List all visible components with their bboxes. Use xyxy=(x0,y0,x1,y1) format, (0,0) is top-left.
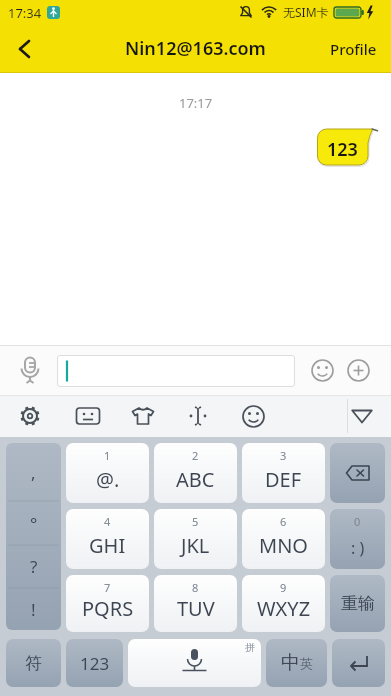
staticText: 中 xyxy=(281,651,300,675)
button[interactable]: 重输 xyxy=(330,575,385,632)
button[interactable] xyxy=(4,32,44,66)
button[interactable] xyxy=(180,398,216,434)
staticText: 符 xyxy=(25,653,42,674)
button[interactable]: 6 xyxy=(242,509,325,569)
button[interactable]: 2 xyxy=(154,443,237,503)
staticText: 17:17 xyxy=(179,94,213,112)
button[interactable]: 3 xyxy=(242,443,325,503)
button[interactable]: 4 xyxy=(66,509,149,569)
button[interactable] xyxy=(70,398,106,434)
staticText: 拼 xyxy=(245,641,255,654)
button[interactable]: ° xyxy=(6,501,61,545)
staticText: : ) xyxy=(351,537,365,559)
staticText: JKL xyxy=(181,532,210,559)
button[interactable]: 拼 xyxy=(128,639,261,687)
staticText: 5 xyxy=(192,514,199,529)
staticText: MNO xyxy=(259,532,308,559)
staticText: 7 xyxy=(104,580,111,595)
button[interactable] xyxy=(125,398,161,434)
staticText: ! xyxy=(31,598,36,621)
staticText: DEF xyxy=(265,466,302,493)
staticText: 9 xyxy=(280,580,287,595)
staticText: 无SIM卡 xyxy=(283,4,329,20)
button[interactable] xyxy=(57,355,295,387)
button[interactable]: 9 xyxy=(242,575,325,632)
button[interactable]: , xyxy=(6,443,61,501)
button[interactable] xyxy=(332,639,385,687)
staticText: Profile xyxy=(330,39,377,59)
staticText: 17:34 xyxy=(8,4,42,22)
staticText: 重输 xyxy=(341,593,375,614)
button[interactable]: 0 xyxy=(330,509,385,569)
staticText: ? xyxy=(30,555,38,578)
button[interactable]: 1 xyxy=(66,443,149,503)
button[interactable] xyxy=(344,398,380,434)
button[interactable]: 7 xyxy=(66,575,149,632)
staticText: 3 xyxy=(280,448,287,463)
staticText: ABC xyxy=(176,466,215,493)
staticText: 2 xyxy=(192,448,199,463)
button[interactable] xyxy=(305,352,340,388)
staticText: 1 xyxy=(104,448,111,463)
button[interactable] xyxy=(235,398,271,434)
button[interactable]: 5 xyxy=(154,509,237,569)
button[interactable]: 123 xyxy=(66,639,123,687)
button[interactable]: 符 xyxy=(6,639,61,687)
staticText: 6 xyxy=(280,514,287,529)
staticText: 123 xyxy=(80,652,110,675)
button[interactable]: ? xyxy=(6,545,61,588)
staticText: Nin12@163.com xyxy=(125,36,266,61)
staticText: GHI xyxy=(89,532,126,559)
staticText: 123 xyxy=(327,137,358,162)
button[interactable]: ! xyxy=(6,588,61,630)
staticText: PQRS xyxy=(82,595,134,622)
staticText: WXYZ xyxy=(257,595,311,622)
button[interactable]: 8 xyxy=(154,575,237,632)
staticText: 8 xyxy=(192,580,199,595)
button[interactable] xyxy=(330,443,385,503)
staticText: 英 xyxy=(300,655,313,671)
staticText: TUV xyxy=(177,595,215,622)
button[interactable] xyxy=(12,352,48,388)
button[interactable]: Profile xyxy=(324,33,383,65)
button[interactable] xyxy=(12,398,48,434)
staticText: 0 xyxy=(354,514,361,529)
staticText: 4 xyxy=(104,514,111,529)
button[interactable]: 中 xyxy=(266,639,327,687)
staticText: @. xyxy=(96,466,120,493)
staticText: , xyxy=(31,461,36,484)
button[interactable] xyxy=(340,352,376,388)
staticText: ° xyxy=(30,512,38,535)
